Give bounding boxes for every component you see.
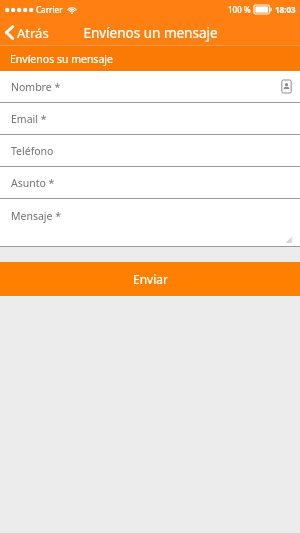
button[interactable]: Email * (0, 103, 300, 134)
staticText: Teléfono (11, 144, 54, 158)
staticText: Envíenos su mensaje (10, 52, 113, 66)
staticText: Envíenos un mensaje (83, 24, 218, 42)
staticText: 18:03 (275, 4, 296, 15)
button[interactable]: Mensaje * (0, 199, 300, 246)
button[interactable]: Asunto * (0, 167, 300, 198)
button[interactable]: Nombre * (0, 71, 300, 102)
staticText: Asunto * (11, 176, 55, 190)
button[interactable]: Teléfono (0, 135, 300, 166)
staticText: Nombre * (11, 80, 61, 94)
staticText: Mensaje * (11, 209, 62, 223)
button[interactable]: Atrás (0, 19, 57, 46)
staticText: 100 % (228, 4, 251, 15)
button[interactable]: Enviar (0, 262, 300, 296)
staticText: Carrier (36, 4, 63, 15)
staticText: Atrás (17, 24, 49, 42)
button[interactable]: Elegir contacto (280, 80, 293, 93)
staticText: Email * (11, 112, 47, 126)
staticText: Enviar (133, 271, 168, 287)
